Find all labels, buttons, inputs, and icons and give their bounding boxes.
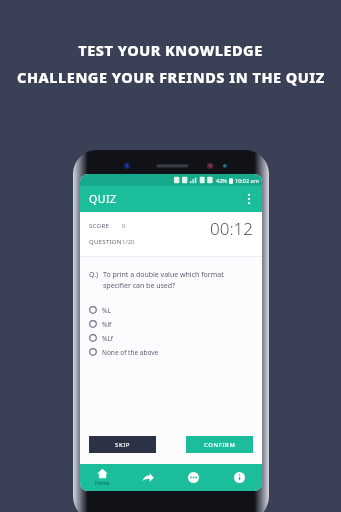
staticText: %lf bbox=[102, 320, 112, 329]
staticText: CONFIRM bbox=[204, 441, 236, 449]
staticText: CHALLENGE YOUR FREINDS IN THE QUIZ bbox=[17, 67, 325, 87]
staticText: 0 bbox=[122, 222, 126, 230]
staticText: None of the above bbox=[102, 348, 159, 357]
button[interactable]: More bbox=[170, 464, 216, 491]
staticText: QUIZ bbox=[89, 192, 117, 206]
button[interactable]: %L bbox=[89, 303, 253, 317]
button[interactable]: SKIP bbox=[89, 436, 156, 453]
button[interactable]: CONFIRM bbox=[186, 436, 253, 453]
staticText: %Lf bbox=[102, 334, 114, 343]
button[interactable]: %Lf bbox=[89, 331, 253, 345]
staticText: Q.) bbox=[89, 270, 99, 280]
staticText: 10:02 am bbox=[235, 177, 259, 184]
staticText: 1/20 bbox=[122, 238, 135, 246]
button[interactable]: Home bbox=[80, 464, 125, 491]
button[interactable]: None of the above bbox=[89, 345, 253, 359]
button[interactable]: Share bbox=[125, 464, 170, 491]
staticText: 00:12 bbox=[210, 217, 253, 240]
button[interactable]: Info bbox=[216, 464, 262, 491]
button[interactable]: More options bbox=[241, 191, 257, 207]
staticText: 42% bbox=[216, 177, 227, 184]
staticText: TEST YOUR KNOWLEDGE bbox=[78, 40, 263, 60]
staticText: Home bbox=[95, 480, 110, 487]
staticText: SKIP bbox=[115, 441, 131, 449]
staticText: %L bbox=[102, 306, 111, 315]
staticText: To print a double value which format spe… bbox=[103, 270, 253, 290]
button[interactable]: %lf bbox=[89, 317, 253, 331]
staticText: SCORE bbox=[89, 222, 122, 230]
staticText: QUESTION bbox=[89, 238, 122, 246]
